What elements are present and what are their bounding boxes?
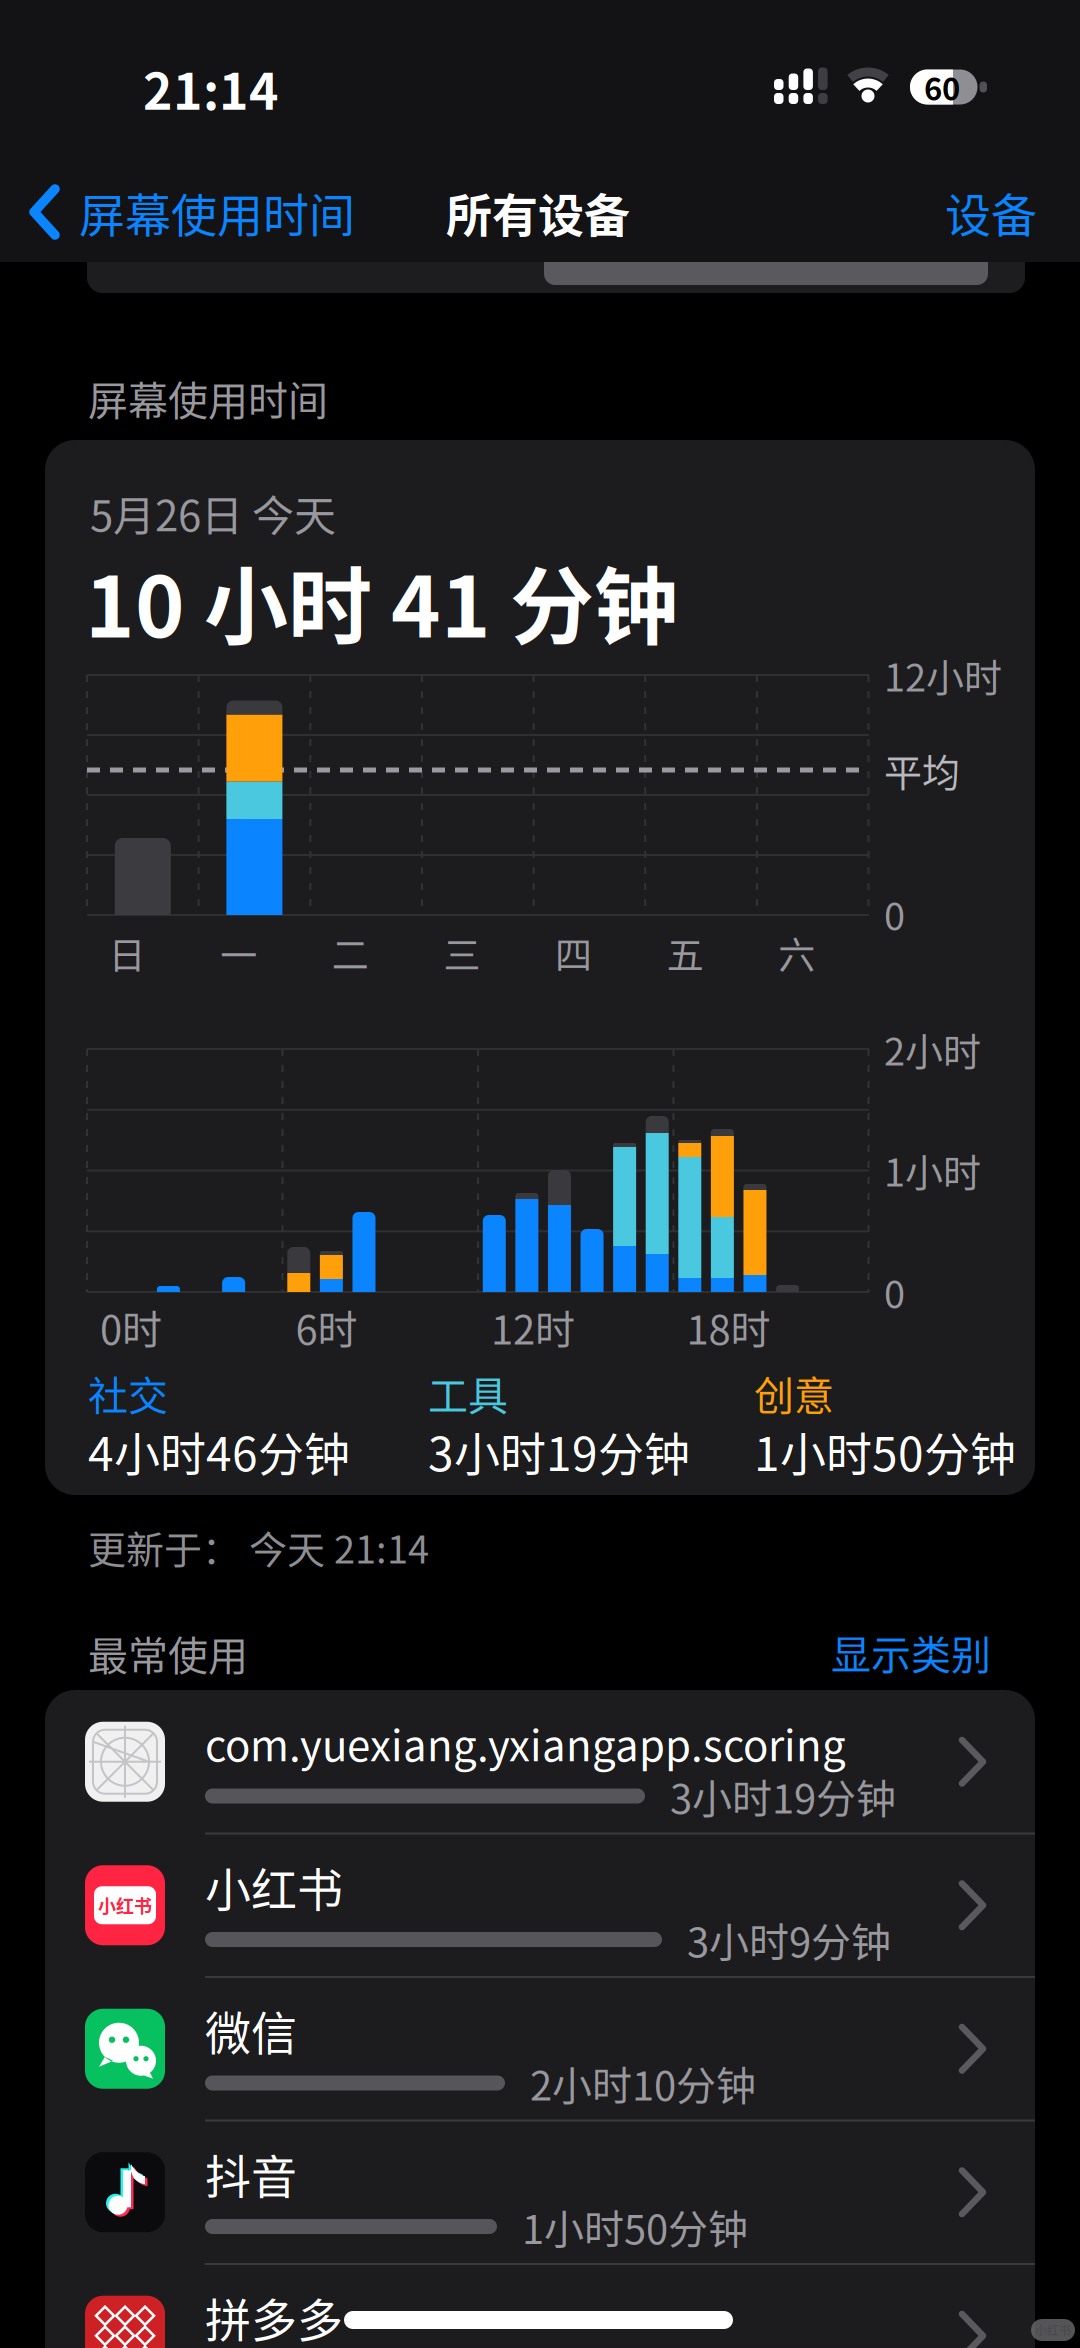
staticText: 1小时	[884, 1142, 981, 1197]
staticText: 6时	[295, 1298, 357, 1356]
staticText: 社交	[88, 1364, 168, 1422]
staticText: 5月26日 今天	[90, 483, 336, 543]
staticText: 拼多多	[205, 2284, 343, 2348]
staticText: 平均	[884, 742, 960, 797]
staticText: 小红书	[1035, 2321, 1071, 2339]
staticText: 2小时	[884, 1021, 981, 1076]
staticText: 所有设备	[446, 179, 630, 245]
staticText: 小红书	[205, 1853, 343, 1920]
staticText: 60	[924, 65, 960, 109]
staticText: 显示类别	[831, 1623, 991, 1681]
staticText: 小红书	[98, 1892, 152, 1918]
staticText: 1小时50分钟	[522, 2197, 748, 2255]
staticText: 10 小时 41 分钟	[85, 540, 678, 662]
staticText: 最常使用	[88, 1624, 248, 1682]
staticText: 1小时50分钟	[754, 1418, 1016, 1484]
staticText: 4小时46分钟	[88, 1418, 350, 1484]
button[interactable]	[87, 262, 1025, 293]
button[interactable]: 显示类别	[691, 1622, 991, 1682]
staticText: 日	[108, 926, 145, 980]
staticText: 0时	[100, 1298, 162, 1356]
button[interactable]: 小红书	[45, 1833, 1035, 1977]
staticText: 18时	[686, 1298, 770, 1356]
staticText: 四	[555, 926, 592, 980]
staticText: 屏幕使用时间	[88, 369, 328, 427]
staticText: 2小时10分钟	[530, 2054, 756, 2112]
button[interactable]: 设备	[877, 177, 1037, 247]
staticText: 0	[884, 1264, 905, 1319]
button[interactable]: com.yuexiang.yxiangapp.scoring	[45, 1690, 1035, 1833]
staticText: 二	[332, 926, 369, 980]
staticText: 屏幕使用时间	[79, 179, 355, 245]
staticText: 0	[884, 886, 905, 941]
staticText: 更新于： 今天 21:14	[88, 1519, 429, 1574]
staticText: 微信	[205, 1997, 297, 2063]
staticText: 五	[667, 926, 704, 980]
button[interactable]: 拼多多	[45, 2264, 1035, 2348]
button[interactable]: 抖音	[45, 2120, 1035, 2264]
staticText: 工具	[428, 1364, 508, 1422]
button[interactable]: 屏幕使用时间	[28, 177, 508, 247]
staticText: 12小时	[884, 647, 1002, 702]
button[interactable]: 微信	[45, 1977, 1035, 2120]
staticText: 设备	[945, 179, 1037, 245]
staticText: 12时	[491, 1298, 575, 1356]
staticText: 三	[443, 926, 480, 980]
staticText: com.yuexiang.yxiangapp.scoring	[205, 1713, 846, 1773]
staticText: 21:14	[143, 52, 279, 124]
staticText: 抖音	[205, 2140, 297, 2207]
staticText: 3小时9分钟	[687, 1910, 891, 1968]
staticText: 六	[778, 926, 815, 980]
staticText: 一	[220, 926, 257, 980]
staticText: 3小时19分钟	[670, 1767, 896, 1825]
staticText: 3小时19分钟	[428, 1418, 690, 1484]
staticText: 创意	[754, 1364, 834, 1422]
